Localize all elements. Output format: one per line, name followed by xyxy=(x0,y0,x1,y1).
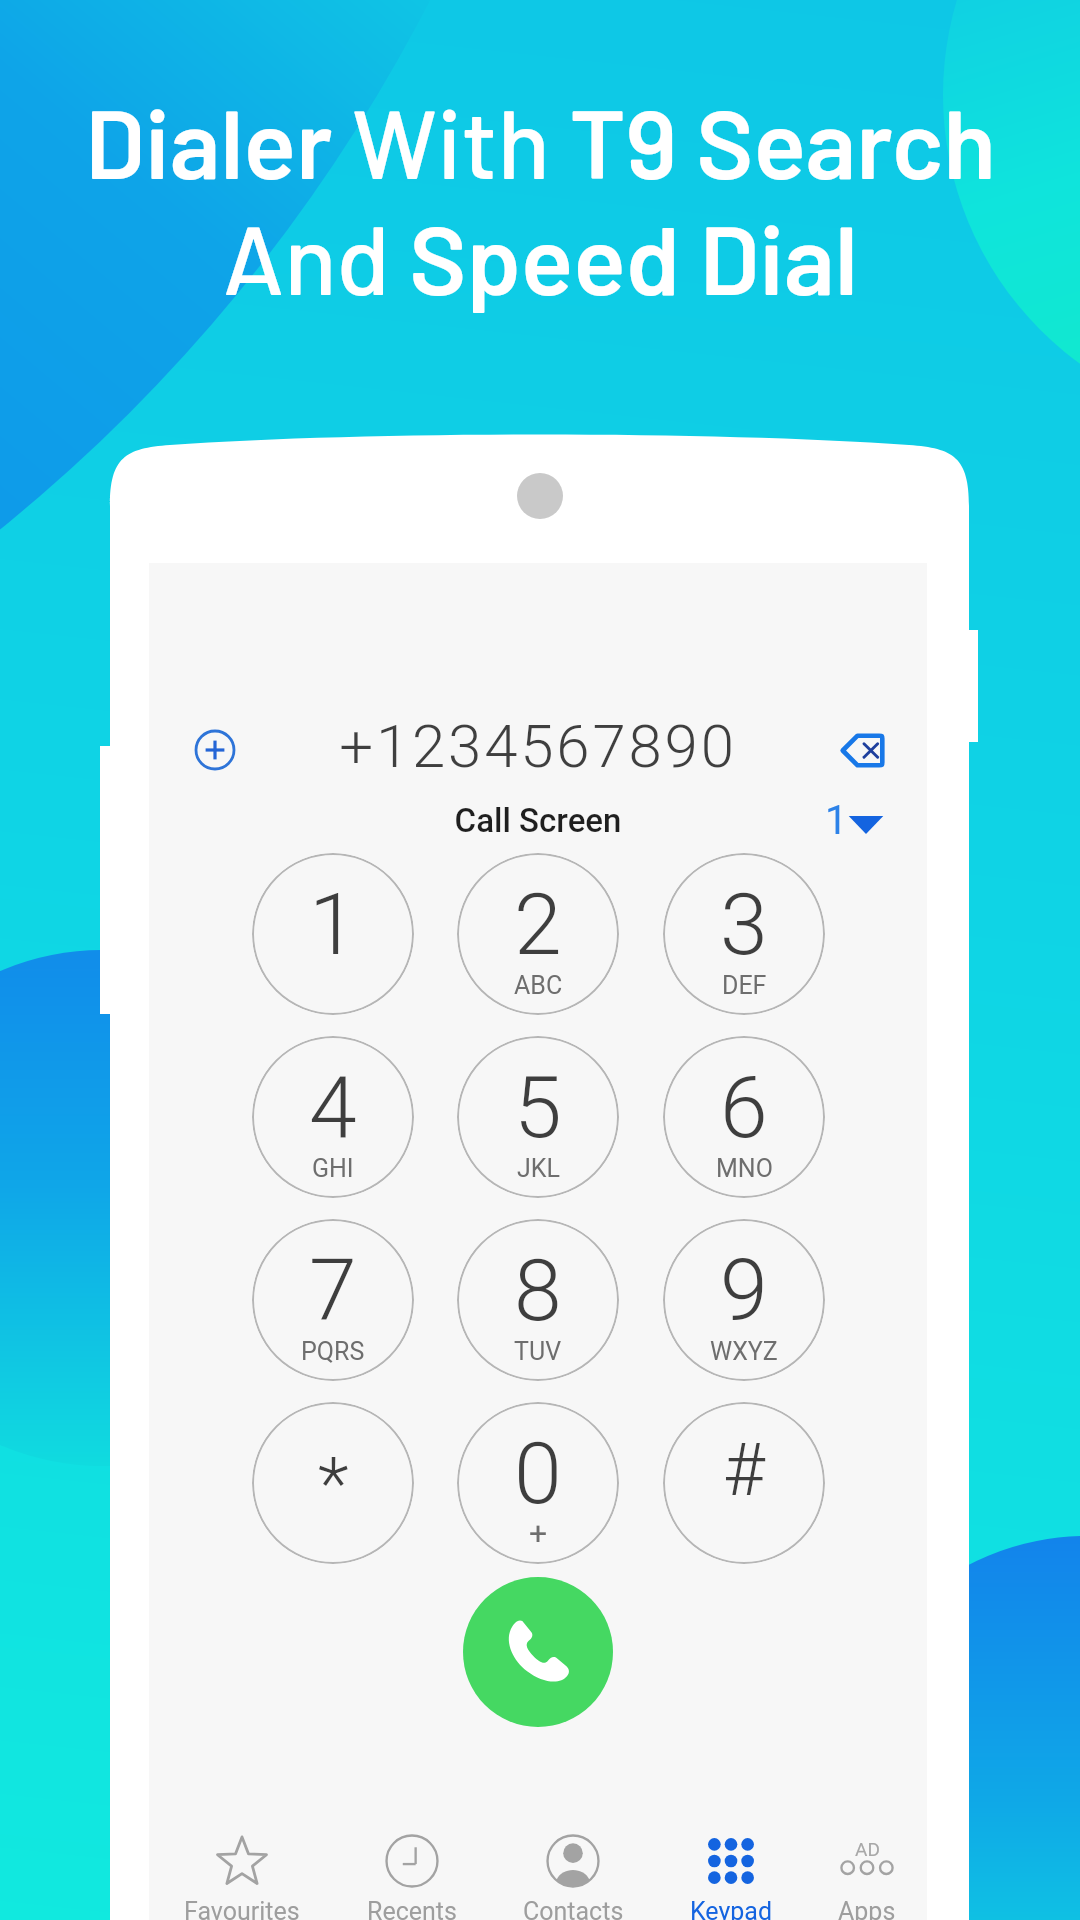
staticText: * xyxy=(318,1442,349,1526)
staticText: MNO xyxy=(716,1154,773,1183)
button[interactable]: 7 xyxy=(252,1219,414,1381)
button[interactable]: # xyxy=(663,1402,825,1564)
staticText: Contacts xyxy=(523,1897,624,1920)
button[interactable]: Keypad xyxy=(653,1831,809,1920)
button[interactable]: Favourites xyxy=(164,1831,320,1920)
button[interactable]: * xyxy=(252,1402,414,1564)
staticText: WXYZ xyxy=(710,1337,778,1366)
staticText: Call Screen xyxy=(149,801,927,840)
button[interactable]: 1 xyxy=(252,853,414,1015)
staticText: + xyxy=(529,1514,548,1552)
staticText: 9 xyxy=(720,1240,768,1341)
staticText: Keypad xyxy=(690,1897,773,1920)
staticText: JKL xyxy=(517,1154,560,1183)
button[interactable]: 6 xyxy=(663,1036,825,1198)
staticText: AD xyxy=(855,1838,880,1860)
button[interactable]: 0 xyxy=(457,1402,619,1564)
staticText: 3 xyxy=(720,874,768,975)
staticText: And Speed Dial xyxy=(223,198,858,314)
button[interactable]: Contacts xyxy=(495,1831,651,1920)
staticText: TUV xyxy=(514,1337,562,1366)
staticText: Recents xyxy=(367,1897,457,1920)
button[interactable]: 8 xyxy=(457,1219,619,1381)
button[interactable]: 4 xyxy=(252,1036,414,1198)
staticText: 7 xyxy=(309,1240,357,1341)
button[interactable]: Call xyxy=(463,1577,613,1727)
staticText: DEF xyxy=(722,971,767,1000)
staticText: Favourites xyxy=(184,1897,300,1920)
staticText: GHI xyxy=(312,1154,354,1183)
staticText: PQRS xyxy=(301,1337,365,1366)
staticText: 6 xyxy=(720,1057,768,1158)
staticText: 8 xyxy=(514,1240,562,1341)
staticText: # xyxy=(723,1428,765,1512)
button[interactable]: Backspace xyxy=(826,714,898,786)
button[interactable]: AD xyxy=(789,1831,945,1920)
staticText: ABC xyxy=(514,971,563,1000)
staticText: Dialer With T9 Search xyxy=(85,82,996,198)
staticText: 5 xyxy=(514,1057,562,1158)
staticText: 1 xyxy=(825,797,848,844)
staticText: 1 xyxy=(309,874,357,975)
staticText: 4 xyxy=(309,1057,357,1158)
button[interactable]: 5 xyxy=(457,1036,619,1198)
staticText: +1234567890 xyxy=(149,711,927,781)
button[interactable]: 1 xyxy=(825,797,884,844)
button[interactable]: 9 xyxy=(663,1219,825,1381)
button[interactable]: 3 xyxy=(663,853,825,1015)
button[interactable]: 2 xyxy=(457,853,619,1015)
button[interactable]: Add number xyxy=(179,714,251,786)
staticText: 2 xyxy=(514,874,562,975)
staticText: Apps xyxy=(838,1897,896,1920)
button[interactable]: Recents xyxy=(334,1831,490,1920)
staticText: 0 xyxy=(514,1423,562,1524)
